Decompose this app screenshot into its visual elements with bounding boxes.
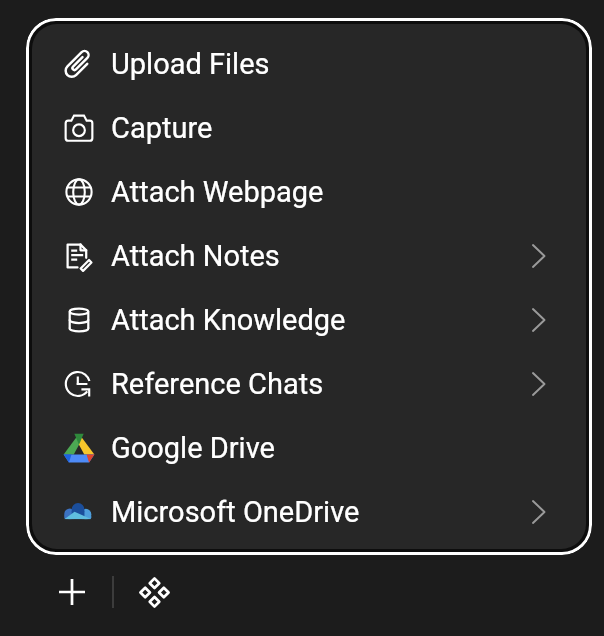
button[interactable]: Apps	[128, 566, 180, 618]
button[interactable]: Microsoft OneDrive	[32, 480, 586, 544]
staticText: Microsoft OneDrive	[111, 495, 360, 529]
staticText: Attach Notes	[111, 239, 280, 273]
button[interactable]: Capture	[32, 96, 586, 160]
button[interactable]: Attach Notes	[32, 224, 586, 288]
button[interactable]: Google Drive	[32, 416, 586, 480]
button[interactable]: Attach Knowledge	[32, 288, 586, 352]
button[interactable]: Upload Files	[32, 32, 586, 96]
staticText: Reference Chats	[111, 367, 324, 401]
staticText: Google Drive	[111, 431, 275, 465]
staticText: Upload Files	[111, 47, 270, 81]
staticText: Attach Knowledge	[111, 303, 346, 337]
staticText: Attach Webpage	[111, 175, 324, 209]
staticText: Capture	[111, 111, 213, 145]
button[interactable]: Add	[46, 566, 98, 618]
button[interactable]: Reference Chats	[32, 352, 586, 416]
button[interactable]: Attach Webpage	[32, 160, 586, 224]
